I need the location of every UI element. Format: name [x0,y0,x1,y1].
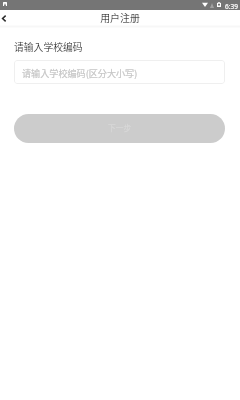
button[interactable]: 请输入学校编码(区分大小写) [14,60,225,84]
staticText: 6:39 [225,2,238,11]
staticText: 下一步 [108,122,132,133]
button[interactable]: Back [0,10,12,26]
staticText: 请输入学校编码(区分大小写) [22,66,138,79]
staticText: 请输入学校编码 [14,40,83,54]
staticText: 用户注册 [100,11,140,25]
button[interactable]: 下一步 [14,114,225,143]
